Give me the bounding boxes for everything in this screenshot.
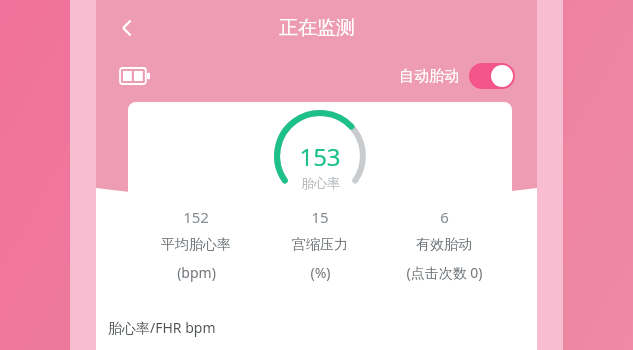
button[interactable]: 153 <box>128 102 512 298</box>
button[interactable]: 6 <box>382 207 506 282</box>
staticText: (bpm) <box>177 263 216 282</box>
button[interactable]: 152 <box>134 207 258 282</box>
button[interactable]: 自动胎动 <box>399 63 515 89</box>
button[interactable]: 15 <box>258 207 382 282</box>
staticText: (%) <box>310 263 331 282</box>
staticText: 有效胎动 <box>416 236 472 254</box>
staticText: 正在监测 <box>279 16 355 40</box>
staticText: 15 <box>311 207 329 227</box>
staticText: 153 <box>299 140 341 173</box>
staticText: 152 <box>183 207 209 227</box>
staticText: 平均胎心率 <box>161 236 231 254</box>
staticText: 胎心率 <box>301 175 340 191</box>
staticText: (点击次数 0) <box>406 263 483 282</box>
staticText: 6 <box>440 207 449 227</box>
staticText: 自动胎动 <box>399 67 459 86</box>
staticText: 宫缩压力 <box>292 236 348 254</box>
button[interactable]: Battery level <box>120 61 160 91</box>
button[interactable]: Back <box>104 4 152 52</box>
staticText: 胎心率/FHR bpm <box>108 318 216 337</box>
